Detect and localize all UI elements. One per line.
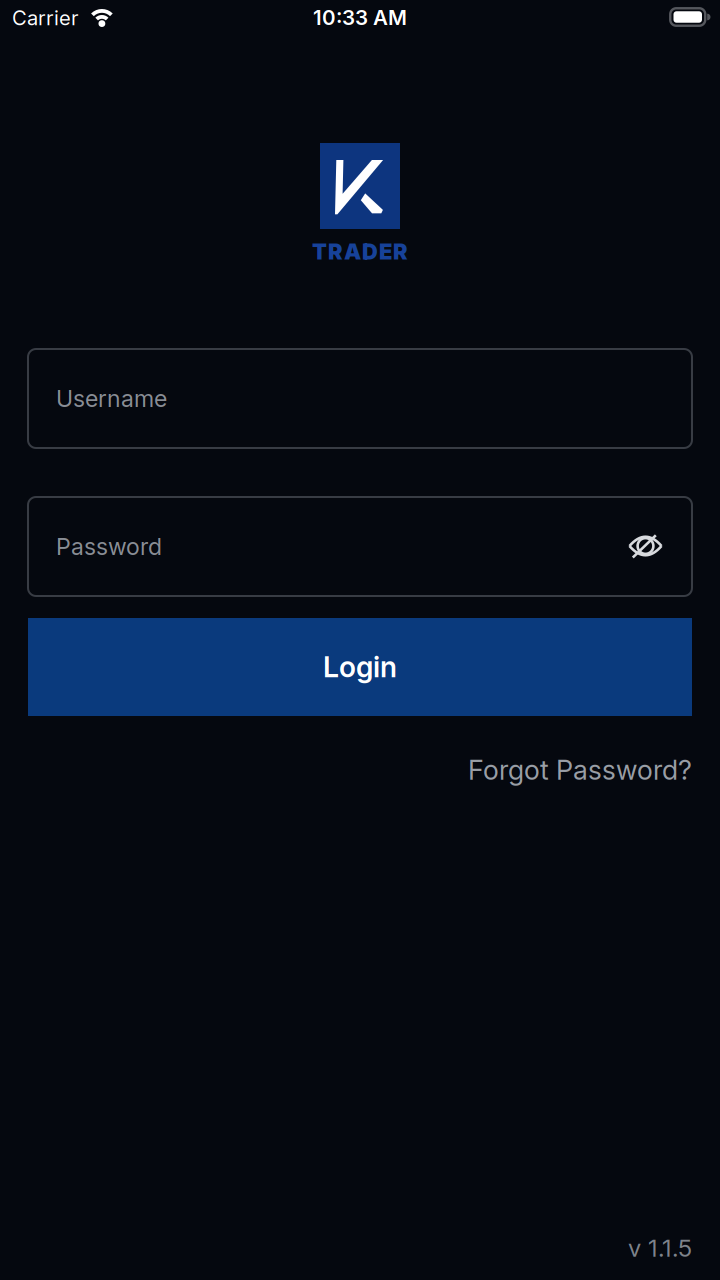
- button[interactable]: Username: [28, 349, 692, 448]
- staticText: Username: [56, 384, 167, 413]
- button[interactable]: Login: [28, 618, 692, 716]
- staticText: Login: [323, 650, 397, 684]
- staticText: Carrier: [12, 6, 79, 30]
- staticText: 10:33 AM: [313, 5, 407, 30]
- button[interactable]: Password: [28, 497, 692, 596]
- button[interactable]: [623, 524, 667, 568]
- staticText: Forgot Password?: [468, 754, 692, 786]
- staticText: T R A D E R: [312, 238, 408, 265]
- button[interactable]: Forgot Password?: [468, 754, 692, 786]
- staticText: v 1.1.5: [628, 1233, 692, 1262]
- staticText: Password: [56, 532, 162, 561]
